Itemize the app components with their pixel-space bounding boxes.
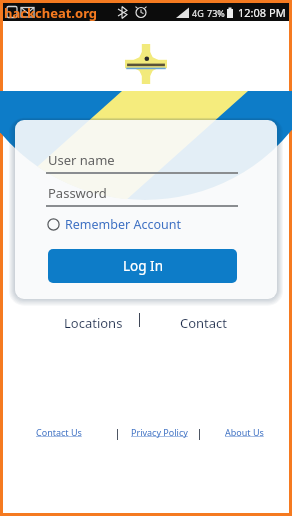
staticText: About Us [225,426,264,438]
staticText: Contact [180,314,228,332]
staticText: Privacy Policy [131,426,188,438]
staticText: hackcheat.org [4,4,98,22]
staticText: Locations [64,314,123,332]
button[interactable]: Remember Account [47,215,181,234]
staticText: Password [48,184,107,202]
staticText: Log In [123,257,163,275]
button[interactable]: Contact Us [36,426,82,438]
staticText: Remember Account [65,216,181,233]
button[interactable]: Privacy Policy [131,426,188,438]
button[interactable]: About Us [225,426,264,438]
staticText: 12:08 PM [238,5,286,20]
staticText: 4G [192,7,204,19]
button[interactable]: Locations [58,310,129,336]
staticText: User name [48,151,115,169]
staticText: Contact Us [36,426,82,438]
staticText: 73% [207,7,225,19]
button[interactable]: Contact [174,310,234,336]
button[interactable]: Log In [48,249,237,283]
